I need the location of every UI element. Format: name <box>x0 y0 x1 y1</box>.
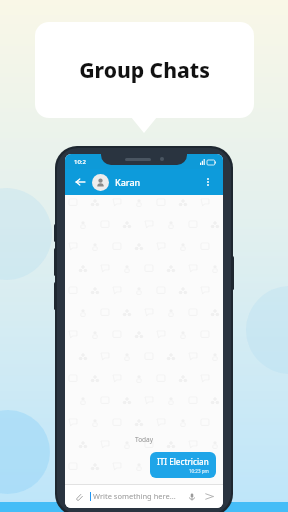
button[interactable]: Back <box>72 174 88 190</box>
button[interactable]: Attach <box>72 490 85 503</box>
button[interactable]: Profile <box>92 174 109 191</box>
staticText: Today <box>135 435 154 444</box>
button[interactable]: Send <box>203 490 216 503</box>
staticText: 10:23 pm <box>189 468 209 474</box>
staticText: Write something here... <box>93 491 176 501</box>
button[interactable]: ITI Electrician <box>150 452 216 478</box>
button[interactable]: More options <box>200 174 216 190</box>
staticText: Karan <box>115 176 141 188</box>
staticText: 10:2 <box>74 158 86 166</box>
button[interactable]: Voice message <box>185 490 198 503</box>
staticText: ITI Electrician <box>157 456 209 467</box>
staticText: Group Chats <box>79 56 210 85</box>
button[interactable]: Group Chats <box>35 22 254 118</box>
